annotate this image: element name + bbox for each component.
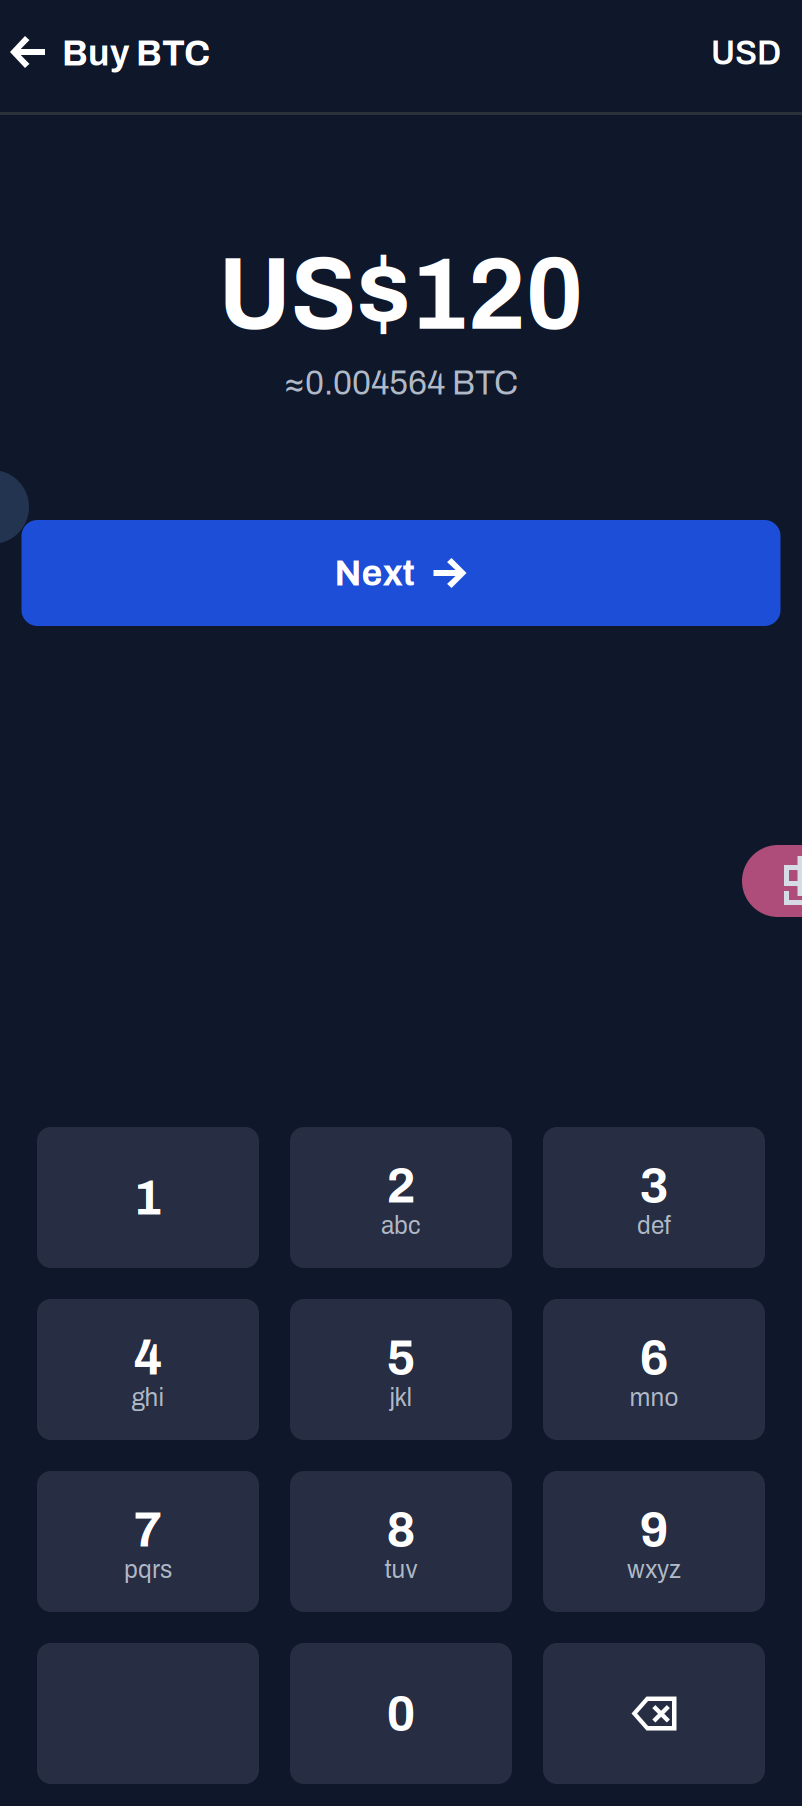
staticText: Buy BTC — [62, 33, 210, 73]
button[interactable]: Buy BTC — [0, 0, 222, 112]
staticText: 8 — [386, 1502, 415, 1557]
button[interactable]: USD — [690, 0, 802, 112]
staticText: USD — [711, 34, 781, 72]
button[interactable]: Translate — [742, 845, 802, 917]
staticText: 0 — [386, 1686, 415, 1741]
staticText: 5 — [386, 1330, 415, 1385]
staticText: 7 — [133, 1502, 162, 1557]
staticText: Next — [334, 553, 414, 593]
button[interactable]: 9 — [543, 1471, 765, 1612]
button[interactable]: Delete — [543, 1643, 765, 1784]
button[interactable]: 7 — [37, 1471, 259, 1612]
staticText: ghi — [131, 1384, 164, 1411]
staticText: pqrs — [124, 1556, 172, 1583]
button[interactable]: 8 — [290, 1471, 512, 1612]
staticText: mno — [629, 1384, 678, 1411]
staticText: abc — [381, 1212, 421, 1239]
staticText: ≈0.004564 BTC — [284, 364, 518, 402]
button[interactable]: 2 — [290, 1127, 512, 1268]
staticText: 6 — [639, 1330, 668, 1385]
staticText: 1 — [133, 1170, 162, 1225]
button[interactable]: Next — [21, 520, 780, 626]
button[interactable]: 6 — [543, 1299, 765, 1440]
staticText: def — [637, 1212, 671, 1239]
staticText: 4 — [133, 1330, 162, 1385]
staticText: wxyz — [627, 1556, 681, 1583]
staticText: 9 — [639, 1502, 668, 1557]
button[interactable]: 4 — [37, 1299, 259, 1440]
staticText: jkl — [389, 1384, 412, 1411]
staticText: 3 — [639, 1158, 668, 1213]
button[interactable]: 0 — [290, 1643, 512, 1784]
button[interactable]: 1 — [37, 1127, 259, 1268]
staticText: tuv — [384, 1556, 417, 1583]
staticText: 2 — [386, 1158, 415, 1213]
button[interactable]: 5 — [290, 1299, 512, 1440]
button[interactable]: 3 — [543, 1127, 765, 1268]
staticText: US$120 — [218, 240, 583, 350]
